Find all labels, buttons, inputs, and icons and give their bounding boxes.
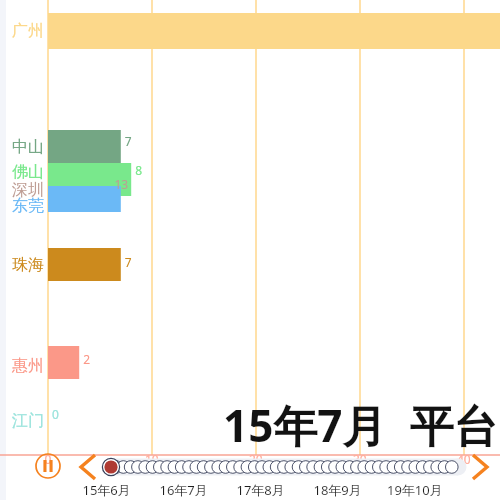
button[interactable]: Next bbox=[468, 454, 492, 478]
button[interactable]: Pause bbox=[36, 454, 60, 478]
button[interactable] bbox=[0, 0, 500, 500]
button[interactable]: Previous bbox=[76, 454, 100, 478]
